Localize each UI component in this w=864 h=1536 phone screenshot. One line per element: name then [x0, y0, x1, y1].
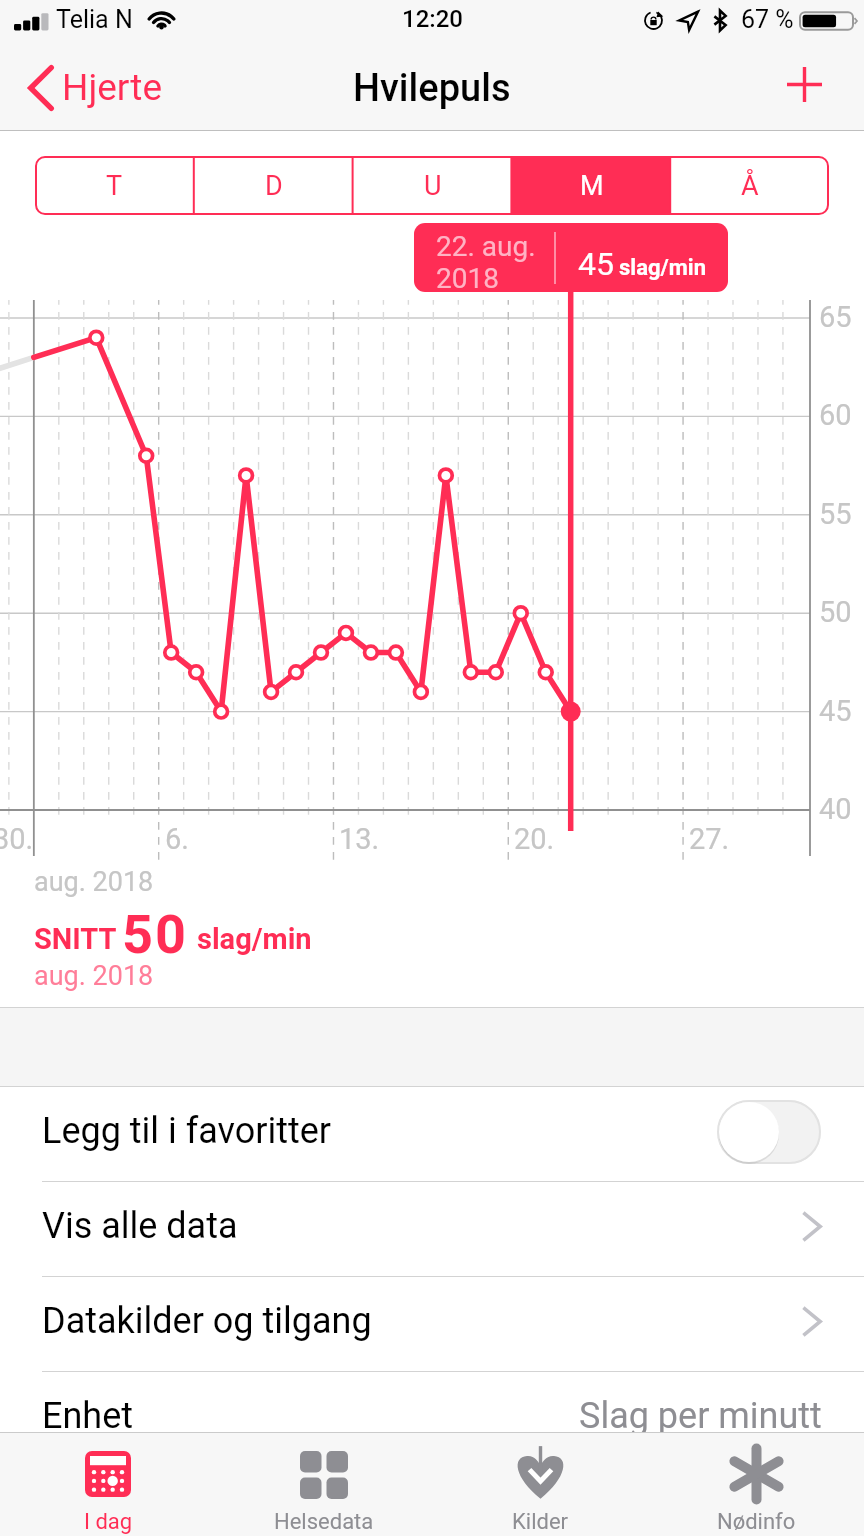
staticText: 13. [339, 822, 380, 856]
staticText: 67 % [741, 5, 794, 34]
button[interactable]: T [35, 156, 194, 215]
staticText: Helsedata [274, 1509, 374, 1535]
staticText: Vis alle data [42, 1205, 238, 1247]
staticText: 22. aug. [436, 230, 536, 263]
button[interactable]: Legg til i favoritter [0, 1084, 864, 1178]
staticText: 2018 [436, 262, 499, 292]
staticText: I dag [84, 1509, 133, 1535]
staticText: 50 [819, 595, 852, 629]
staticText: 65 [819, 300, 852, 334]
button[interactable]: Datakilder og tilgang [0, 1274, 864, 1368]
staticText: D [265, 170, 283, 202]
staticText: T [106, 170, 123, 202]
button[interactable]: U [353, 156, 512, 215]
staticText: Legg til i favoritter [42, 1110, 332, 1152]
button[interactable]: Kilder [432, 1433, 648, 1536]
button[interactable]: Å [671, 156, 829, 215]
staticText: 60 [819, 398, 852, 432]
staticText: Datakilder og tilgang [42, 1300, 372, 1342]
staticText: U [424, 170, 442, 202]
staticText: slag/min [197, 922, 312, 956]
button[interactable]: Nødinfo [648, 1433, 864, 1536]
button[interactable]: Hjerte [17, 57, 179, 119]
button[interactable]: D [194, 156, 353, 215]
staticText: 6. [165, 822, 189, 856]
staticText: Kilder [512, 1509, 569, 1535]
button[interactable]: Vis alle data [0, 1179, 864, 1273]
staticText: aug. 2018 [34, 866, 154, 898]
button[interactable]: I dag [0, 1433, 216, 1536]
staticText: SNITT [34, 922, 117, 956]
button[interactable]: M [512, 156, 671, 215]
staticText: Telia N [56, 5, 133, 34]
staticText: Å [741, 170, 759, 202]
staticText: 20. [514, 822, 555, 856]
staticText: 27. [689, 822, 730, 856]
button[interactable]: Helsedata [216, 1433, 432, 1536]
staticText: Hvilepuls [353, 66, 511, 111]
staticText: Slag per minutt [579, 1395, 822, 1437]
staticText: 50 [122, 903, 188, 966]
staticText: 45 [578, 245, 614, 283]
staticText: aug. 2018 [34, 960, 154, 992]
staticText: Nødinfo [717, 1509, 796, 1535]
staticText: slag/min [619, 255, 706, 281]
staticText: M [580, 170, 604, 202]
staticText: 55 [819, 497, 852, 531]
staticText: Hjerte [62, 66, 163, 109]
staticText: 45 [819, 694, 852, 728]
staticText: 12:20 [402, 5, 463, 33]
staticText: 30. [0, 822, 34, 856]
button[interactable]: Add [769, 50, 840, 119]
staticText: Enhet [42, 1395, 134, 1437]
button[interactable]: Enhet [0, 1369, 864, 1463]
staticText: 40 [819, 792, 852, 826]
